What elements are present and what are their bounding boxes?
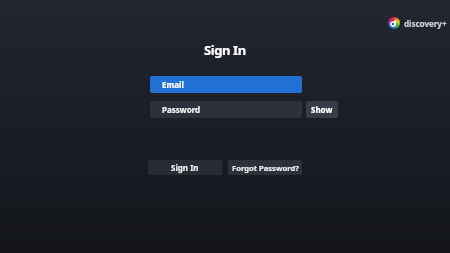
staticText: Sign In — [204, 41, 246, 59]
staticText: Sign In — [171, 162, 199, 173]
button[interactable]: Email — [150, 76, 302, 93]
button[interactable]: Sign In — [148, 160, 222, 175]
staticText: Show — [311, 104, 333, 115]
button[interactable]: Forgot Password? — [228, 160, 302, 175]
staticText: discovery+ — [404, 18, 447, 29]
button[interactable]: Show — [306, 101, 338, 118]
button[interactable]: Password — [150, 101, 302, 118]
staticText: Email — [162, 79, 184, 90]
staticText: Password — [162, 104, 201, 115]
staticText: Forgot Password? — [232, 163, 299, 173]
